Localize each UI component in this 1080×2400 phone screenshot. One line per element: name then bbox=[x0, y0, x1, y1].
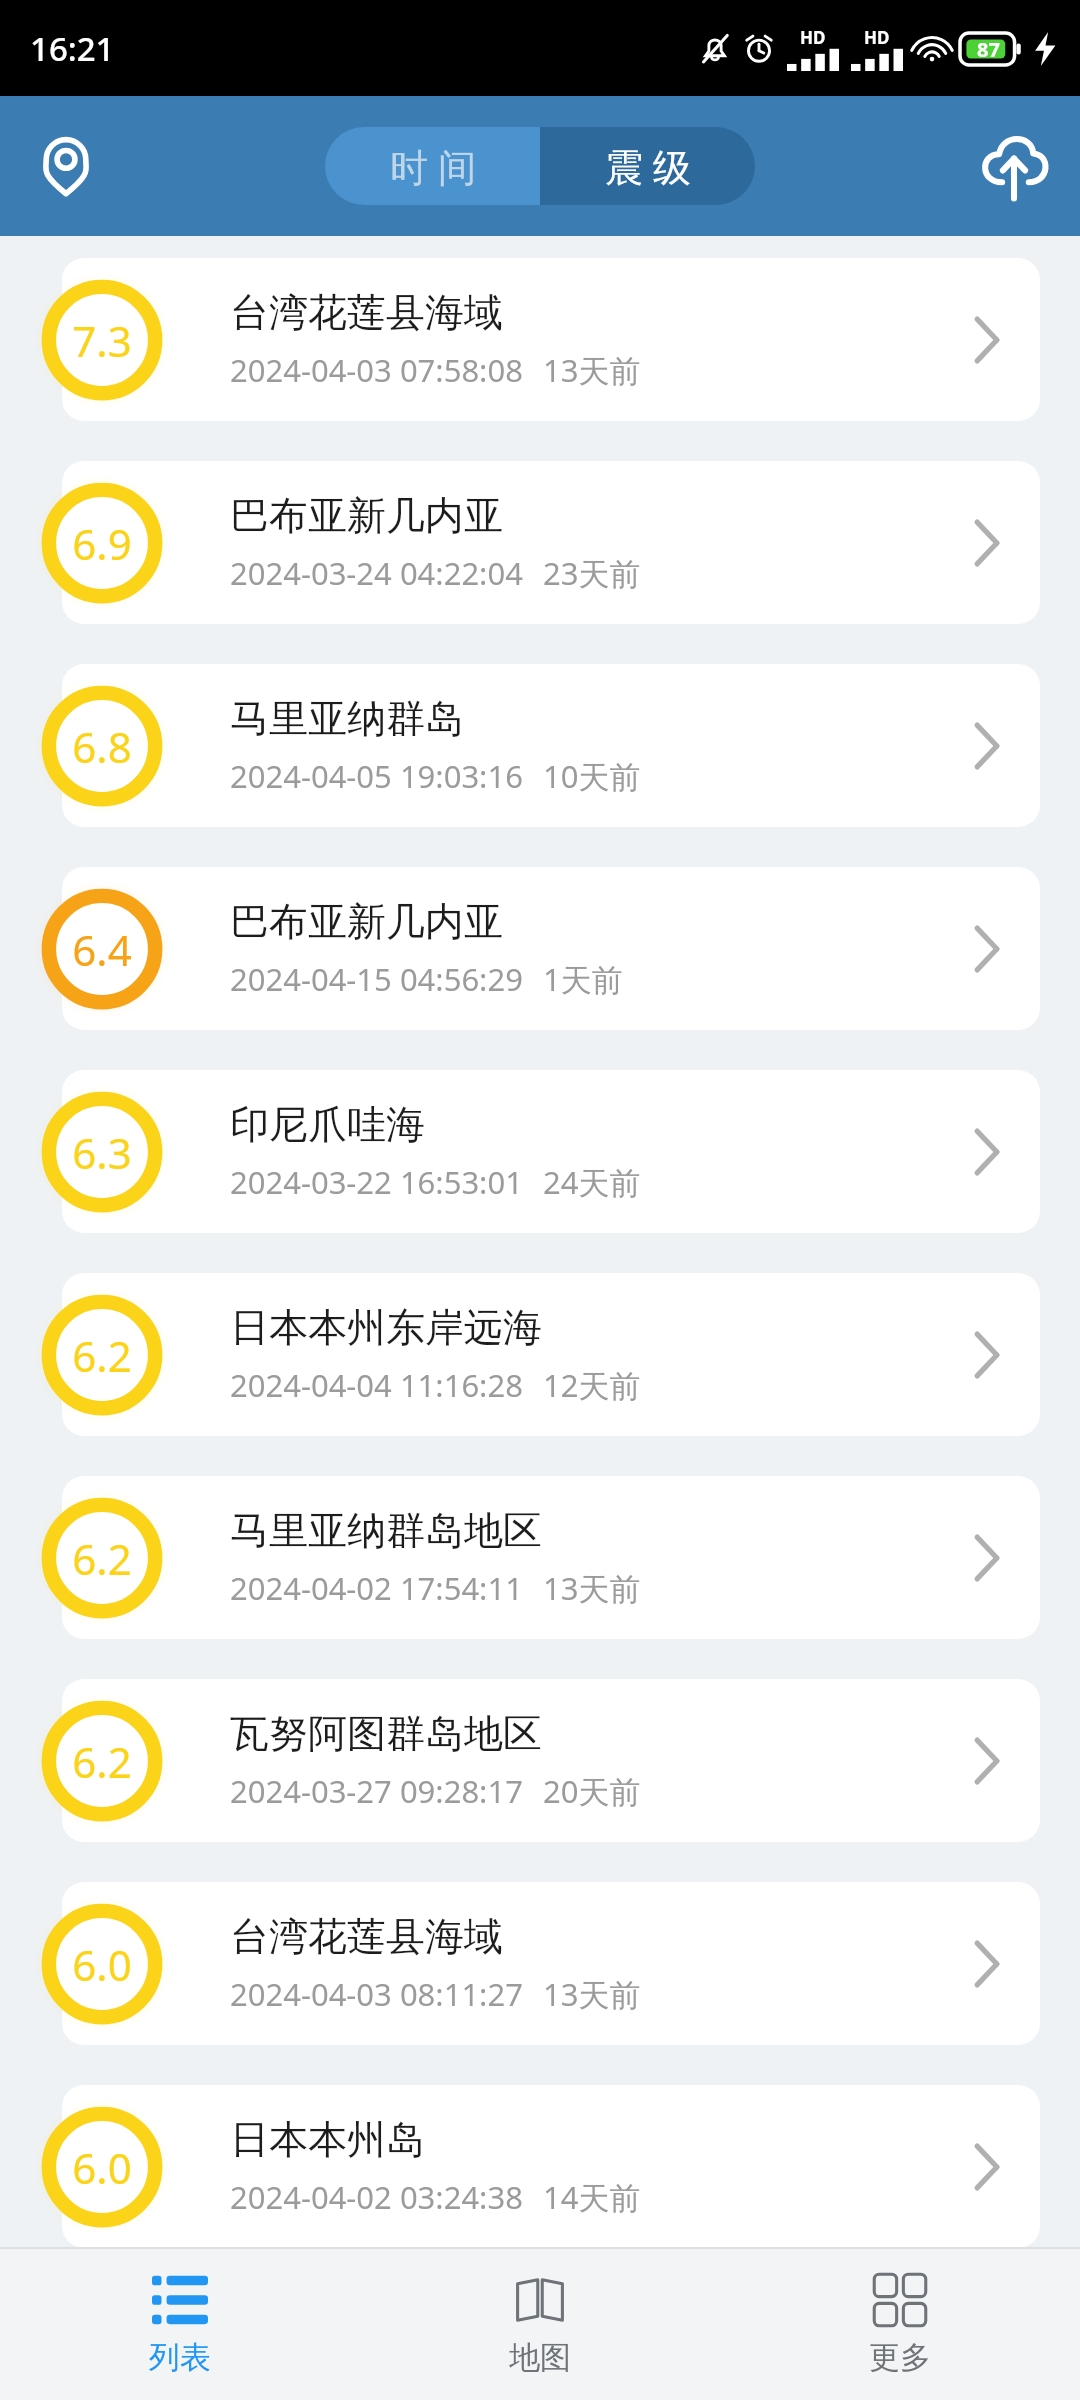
staticText: 14天前 bbox=[543, 2176, 641, 2218]
staticText: 13天前 bbox=[543, 1567, 641, 1609]
staticText: 巴布亚新几内亚 bbox=[230, 491, 503, 540]
staticText: 2024-04-05 19:03:16 bbox=[230, 755, 523, 797]
staticText: 6.0 bbox=[72, 1936, 132, 1993]
button[interactable]: 日本本州东岸远海 bbox=[62, 1273, 1040, 1436]
staticText: 更多 bbox=[869, 2338, 931, 2377]
staticText: 印尼爪哇海 bbox=[230, 1100, 425, 1149]
staticText: 24天前 bbox=[543, 1161, 641, 1203]
staticText: HD bbox=[800, 26, 826, 49]
staticText: 2024-04-02 03:24:38 bbox=[230, 2176, 523, 2218]
staticText: 2024-03-22 16:53:01 bbox=[230, 1161, 523, 1203]
staticText: 2024-03-24 04:22:04 bbox=[230, 552, 523, 594]
staticText: 马里亚纳群岛地区 bbox=[230, 1506, 542, 1555]
button[interactable]: 震 级 bbox=[540, 127, 755, 205]
staticText: 台湾花莲县海域 bbox=[230, 288, 503, 337]
button[interactable]: 日本本州岛 bbox=[62, 2085, 1040, 2248]
staticText: 6.0 bbox=[72, 2139, 132, 2196]
staticText: 2024-04-04 11:16:28 bbox=[230, 1364, 523, 1406]
staticText: 6.8 bbox=[72, 718, 132, 775]
staticText: 2024-04-02 17:54:11 bbox=[230, 1567, 523, 1609]
staticText: 日本本州东岸远海 bbox=[230, 1303, 542, 1352]
staticText: 瓦努阿图群岛地区 bbox=[230, 1709, 542, 1758]
button[interactable]: 瓦努阿图群岛地区 bbox=[62, 1679, 1040, 1842]
staticText: 6.3 bbox=[72, 1124, 132, 1181]
staticText: 20天前 bbox=[543, 1770, 641, 1812]
button[interactable]: 台湾花莲县海域 bbox=[62, 1882, 1040, 2045]
staticText: 震 级 bbox=[605, 140, 691, 192]
staticText: 日本本州岛 bbox=[230, 2115, 425, 2164]
staticText: 6.2 bbox=[72, 1327, 132, 1384]
staticText: 87 bbox=[977, 36, 1000, 63]
button[interactable]: Upload bbox=[964, 116, 1064, 216]
staticText: 马里亚纳群岛 bbox=[230, 694, 464, 743]
staticText: 6.2 bbox=[72, 1733, 132, 1790]
staticText: 10天前 bbox=[543, 755, 641, 797]
staticText: 6.4 bbox=[72, 921, 132, 978]
staticText: 12天前 bbox=[543, 1364, 641, 1406]
staticText: 7.3 bbox=[72, 312, 132, 369]
staticText: 台湾花莲县海域 bbox=[230, 1912, 503, 1961]
staticText: 1天前 bbox=[543, 958, 623, 1000]
button[interactable]: 台湾花莲县海域 bbox=[62, 258, 1040, 421]
button[interactable]: 马里亚纳群岛地区 bbox=[62, 1476, 1040, 1639]
staticText: 13天前 bbox=[543, 1973, 641, 2015]
staticText: 16:21 bbox=[30, 26, 115, 71]
staticText: 2024-03-27 09:28:17 bbox=[230, 1770, 523, 1812]
staticText: HD bbox=[864, 26, 890, 49]
button[interactable]: Location bbox=[16, 116, 116, 216]
staticText: 巴布亚新几内亚 bbox=[230, 897, 503, 946]
staticText: 2024-04-03 08:11:27 bbox=[230, 1973, 523, 2015]
staticText: 时 间 bbox=[390, 140, 476, 192]
staticText: 13天前 bbox=[543, 349, 641, 391]
staticText: 地图 bbox=[509, 2338, 571, 2377]
staticText: 列表 bbox=[149, 2338, 211, 2377]
staticText: 6.2 bbox=[72, 1530, 132, 1587]
staticText: 23天前 bbox=[543, 552, 641, 594]
staticText: 2024-04-03 07:58:08 bbox=[230, 349, 523, 391]
button[interactable]: 时 间 bbox=[325, 127, 540, 205]
button[interactable]: 地图 bbox=[360, 2249, 720, 2400]
staticText: 6.9 bbox=[72, 515, 132, 572]
button[interactable]: 印尼爪哇海 bbox=[62, 1070, 1040, 1233]
button[interactable]: 巴布亚新几内亚 bbox=[62, 867, 1040, 1030]
button[interactable]: 巴布亚新几内亚 bbox=[62, 461, 1040, 624]
button[interactable]: 更多 bbox=[720, 2249, 1080, 2400]
staticText: 2024-04-15 04:56:29 bbox=[230, 958, 523, 1000]
button[interactable]: 马里亚纳群岛 bbox=[62, 664, 1040, 827]
button[interactable]: 列表 bbox=[0, 2249, 360, 2400]
